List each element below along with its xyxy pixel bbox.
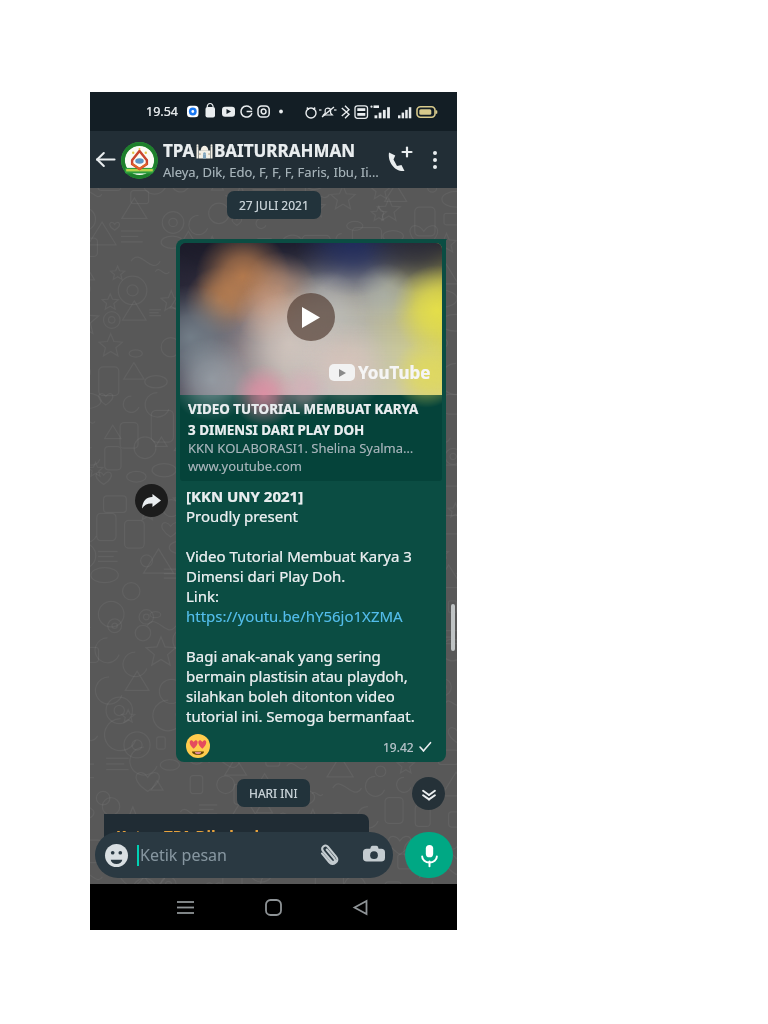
staticText: 19.42 [383, 739, 414, 755]
button[interactable]: TPA [163, 139, 379, 181]
button[interactable]: Camera [358, 839, 390, 871]
button[interactable]: Ketua TPA Dikabarkan Assagaaaa... [104, 814, 369, 846]
button[interactable]: Back [90, 131, 120, 188]
staticText: KKN KOLABORASI1. Shelina Syalma… [188, 439, 414, 457]
button[interactable]: Add call [379, 131, 419, 188]
button[interactable]: More options [419, 131, 451, 188]
button[interactable]: Scroll to bottom [412, 777, 445, 810]
staticText: [KKN UNY 2021] [186, 486, 304, 506]
button[interactable]: Group photo [120, 141, 158, 179]
button[interactable]: Play video [176, 239, 446, 762]
button[interactable]: Ketik pesan [95, 832, 393, 878]
staticText: VIDEO TUTORIAL MEMBUAT KARYA 3 DIMENSI D… [188, 400, 419, 439]
staticText: Ketik pesan [140, 844, 227, 866]
button[interactable]: Home [251, 884, 295, 930]
button[interactable]: Recent apps [163, 884, 207, 930]
staticText: Ketua TPA Dikabarkan Assagaaaa... [116, 825, 369, 846]
staticText: www.youtube.com [188, 457, 302, 475]
button[interactable]: 27 JULI 2021 [227, 191, 321, 219]
button[interactable]: HARI INI [237, 779, 310, 807]
button[interactable]: Forward [135, 484, 168, 517]
button[interactable]: Record voice message [405, 832, 453, 878]
staticText: Video Tutorial Membuat Karya 3 Dimensi d… [186, 526, 412, 606]
staticText: YouTube [358, 361, 431, 384]
staticText: HARI INI [249, 785, 298, 801]
button[interactable]: Attach [313, 839, 345, 871]
staticText: Bagi anak-anak yang sering bermain plast… [186, 626, 415, 726]
button[interactable]: Back [338, 884, 382, 930]
staticText: 19.54 [146, 103, 178, 120]
staticText: TPA [163, 139, 195, 162]
staticText: BAITURRAHMAN [214, 139, 356, 162]
button[interactable]: Play video [180, 243, 442, 395]
staticText: Proudly present [186, 506, 298, 526]
staticText: Aleya, Dik, Edo, F, F, F, Faris, Ibu, Ii… [163, 163, 379, 181]
staticText: 27 JULI 2021 [239, 197, 309, 213]
button[interactable]: https://youtu.be/hY56jo1XZMA [186, 606, 403, 626]
